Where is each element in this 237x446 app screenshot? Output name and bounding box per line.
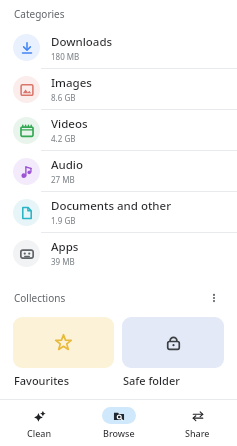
- staticText: Favourites: [14, 373, 70, 388]
- staticText: Categories: [14, 7, 65, 21]
- button[interactable]: Apps: [0, 232, 237, 273]
- button[interactable]: Share: [158, 400, 237, 446]
- staticText: Audio: [51, 157, 84, 173]
- staticText: Collections: [14, 291, 66, 305]
- button[interactable]: More options: [203, 287, 225, 309]
- button[interactable]: Favourites: [13, 317, 114, 388]
- button[interactable]: Safe folder: [122, 317, 224, 388]
- button[interactable]: Audio: [0, 150, 237, 191]
- staticText: 39 MB: [51, 256, 75, 267]
- staticText: Videos: [51, 116, 88, 132]
- button[interactable]: Videos: [0, 109, 237, 150]
- staticText: Clean: [27, 427, 52, 439]
- staticText: Downloads: [51, 34, 113, 50]
- staticText: 8.6 GB: [51, 92, 76, 103]
- staticText: 27 MB: [51, 174, 75, 185]
- staticText: 1.9 GB: [51, 215, 76, 226]
- button[interactable]: Downloads: [0, 27, 237, 68]
- button[interactable]: Browse: [79, 400, 158, 446]
- button[interactable]: Documents and other: [0, 191, 237, 232]
- staticText: 4.2 GB: [51, 133, 76, 144]
- button[interactable]: Images: [0, 68, 237, 109]
- staticText: Images: [51, 75, 92, 91]
- staticText: 180 MB: [51, 51, 80, 62]
- staticText: Safe folder: [123, 373, 180, 388]
- staticText: Browse: [103, 427, 135, 439]
- staticText: Share: [185, 427, 210, 439]
- staticText: Documents and other: [51, 198, 171, 214]
- button[interactable]: Clean: [0, 400, 79, 446]
- staticText: Apps: [51, 239, 79, 255]
